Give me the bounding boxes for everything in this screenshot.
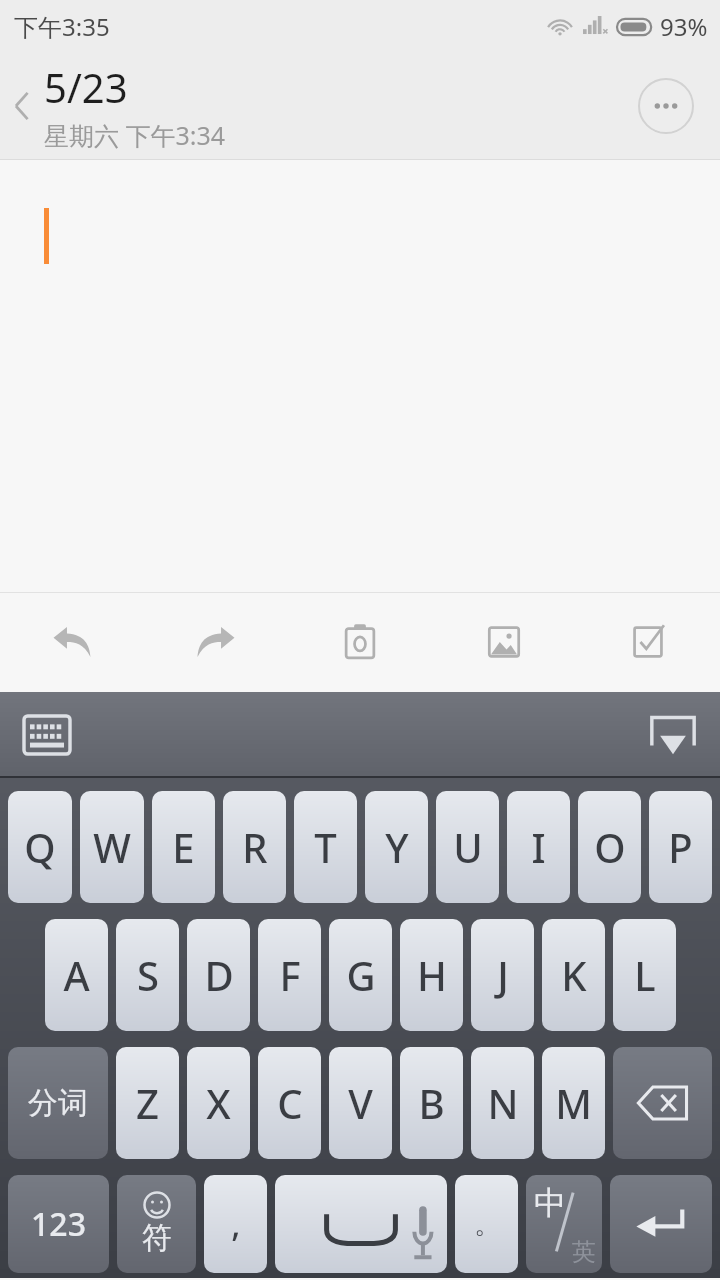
button[interactable]: Symbols and emoji <box>117 1175 196 1273</box>
staticText: 5/23 <box>44 60 128 114</box>
staticText: 93% <box>660 10 708 43</box>
staticText: R <box>242 820 268 874</box>
staticText: I <box>531 820 546 874</box>
staticText: 符 <box>142 1219 172 1257</box>
button[interactable]: Hide keyboard <box>644 706 702 764</box>
staticText: Z <box>136 1076 159 1130</box>
staticText: M <box>555 1076 592 1130</box>
button[interactable]: Switch language <box>526 1175 602 1273</box>
button[interactable]: N <box>471 1047 534 1159</box>
staticText: B <box>418 1076 445 1130</box>
button[interactable]: E <box>152 791 215 903</box>
staticText: 中 <box>534 1183 566 1223</box>
staticText: 分词 <box>28 1084 88 1122</box>
button[interactable]: K <box>542 919 605 1031</box>
staticText: 下午3:35 <box>14 10 110 43</box>
button[interactable]: 。 <box>455 1175 518 1273</box>
staticText: S <box>137 948 159 1002</box>
staticText: N <box>487 1076 519 1130</box>
staticText: J <box>497 948 509 1002</box>
button[interactable]: Switch keyboard <box>18 706 76 764</box>
button[interactable]: Z <box>116 1047 179 1159</box>
staticText: 123 <box>31 1202 86 1246</box>
button[interactable]: G <box>329 919 392 1031</box>
staticText: 。 <box>474 1208 500 1241</box>
button[interactable]: Insert image <box>432 592 576 692</box>
staticText: A <box>63 948 90 1002</box>
button[interactable]: V <box>329 1047 392 1159</box>
button[interactable]: M <box>542 1047 605 1159</box>
staticText: P <box>668 820 693 874</box>
button[interactable]: Redo <box>144 592 288 692</box>
staticText: W <box>93 820 131 874</box>
staticText: G <box>346 948 376 1002</box>
button[interactable]: A <box>45 919 108 1031</box>
staticText: U <box>453 820 483 874</box>
staticText: L <box>634 948 656 1002</box>
staticText: 英 <box>572 1237 596 1267</box>
button[interactable]: D <box>187 919 250 1031</box>
staticText: , <box>231 1201 241 1247</box>
button[interactable]: B <box>400 1047 463 1159</box>
staticText: 星期六 下午3:34 <box>44 118 226 152</box>
button[interactable]: Enter <box>610 1175 712 1273</box>
staticText: C <box>277 1076 303 1130</box>
button[interactable]: F <box>258 919 321 1031</box>
staticText: H <box>417 948 447 1002</box>
staticText: X <box>206 1076 231 1130</box>
button[interactable]: X <box>187 1047 250 1159</box>
button[interactable]: 分词 <box>8 1047 108 1159</box>
button[interactable]: Delete <box>613 1047 712 1159</box>
staticText: F <box>279 948 301 1002</box>
button[interactable]: 123 <box>8 1175 109 1273</box>
button[interactable]: O <box>578 791 641 903</box>
button[interactable]: R <box>223 791 286 903</box>
button[interactable]: W <box>80 791 144 903</box>
button[interactable]: Back <box>0 71 44 141</box>
button[interactable]: L <box>613 919 676 1031</box>
staticText: E <box>172 820 195 874</box>
button[interactable]: C <box>258 1047 321 1159</box>
button[interactable]: Space <box>275 1175 447 1273</box>
button[interactable]: I <box>507 791 570 903</box>
staticText: Y <box>385 820 409 874</box>
staticText: K <box>561 948 587 1002</box>
staticText: Q <box>24 820 56 874</box>
staticText: V <box>348 1076 373 1130</box>
button[interactable]: Q <box>8 791 72 903</box>
staticText: D <box>204 948 234 1002</box>
button[interactable]: More options <box>638 78 694 134</box>
button[interactable]: U <box>436 791 499 903</box>
button[interactable]: Checklist <box>576 592 720 692</box>
button[interactable]: J <box>471 919 534 1031</box>
button[interactable]: Y <box>365 791 428 903</box>
staticText: T <box>314 820 337 874</box>
staticText: O <box>594 820 626 874</box>
button[interactable]: , <box>204 1175 267 1273</box>
button[interactable]: Undo <box>0 592 144 692</box>
button[interactable]: S <box>116 919 179 1031</box>
button[interactable]: T <box>294 791 357 903</box>
button[interactable]: H <box>400 919 463 1031</box>
button[interactable]: P <box>649 791 712 903</box>
button[interactable]: Camera <box>288 592 432 692</box>
